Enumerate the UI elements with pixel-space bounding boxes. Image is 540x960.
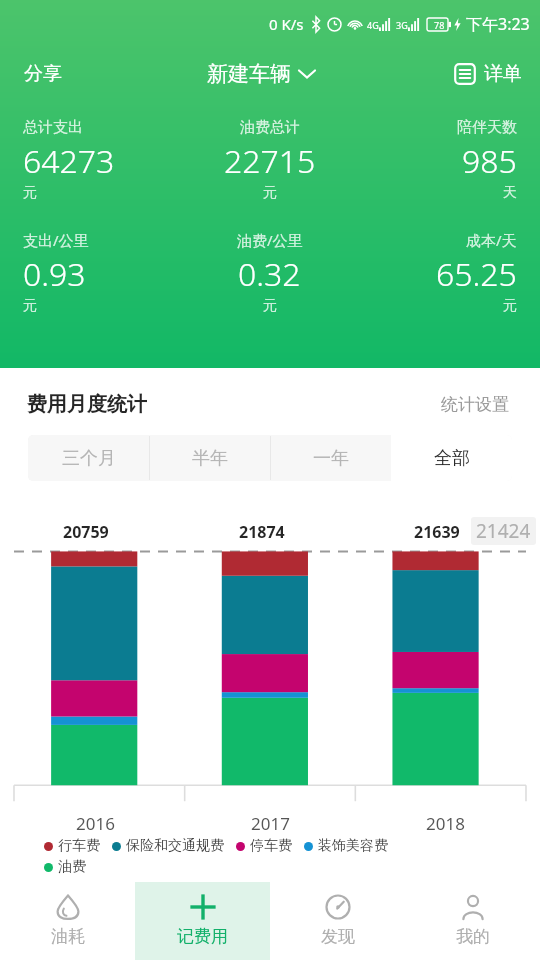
staticText: 保险和交通规费 <box>126 837 224 855</box>
staticText: 装饰美容费 <box>318 837 388 855</box>
staticText: 78 <box>434 19 445 31</box>
staticText: 全部 <box>434 447 470 470</box>
staticText: 3G <box>396 19 408 31</box>
staticText: 元 <box>263 184 277 202</box>
staticText: 2016 <box>76 812 115 835</box>
staticText: 4G <box>367 19 379 31</box>
staticText: 21639 <box>414 521 460 543</box>
button[interactable]: 新建车辆 <box>199 55 323 93</box>
staticText: 新建车辆 <box>207 61 291 87</box>
staticText: 油费总计 <box>240 118 300 137</box>
staticText: 油耗 <box>51 926 85 947</box>
staticText: 22715 <box>224 139 316 183</box>
staticText: 2018 <box>426 812 465 835</box>
button[interactable]: 全部 <box>391 435 512 481</box>
other: 记费用 <box>190 894 216 920</box>
button[interactable]: 油耗 <box>0 882 135 960</box>
staticText: 总计支出 <box>23 118 83 137</box>
staticText: 半年 <box>192 447 228 470</box>
staticText: 支出/公里 <box>23 230 89 250</box>
staticText: 详单 <box>484 62 522 86</box>
staticText: 三个月 <box>62 447 116 470</box>
staticText: 油费/公里 <box>237 230 303 250</box>
button[interactable]: 统计设置 <box>437 390 513 419</box>
staticText: 费用月度统计 <box>27 392 147 417</box>
staticText: 油费 <box>58 858 86 876</box>
button[interactable]: 半年 <box>149 435 270 481</box>
staticText: 分享 <box>24 62 62 86</box>
button[interactable]: 详单 <box>436 56 540 92</box>
staticText: 0.93 <box>23 252 86 296</box>
staticText: 我的 <box>456 926 490 947</box>
staticText: 0 K/s <box>269 14 304 34</box>
other: 油耗 <box>55 894 81 920</box>
other: 详单 <box>454 63 476 85</box>
button[interactable]: 记费用 <box>135 882 270 960</box>
staticText: 元 <box>23 297 37 315</box>
staticText: 985 <box>462 139 517 183</box>
staticText: 记费用 <box>177 926 228 947</box>
staticText: 64273 <box>23 139 115 183</box>
button[interactable]: 我的 <box>405 882 540 960</box>
staticText: 元 <box>23 184 37 202</box>
staticText: 下午3:23 <box>466 13 530 35</box>
staticText: 21424 <box>476 518 531 544</box>
staticText: 21874 <box>239 521 285 543</box>
staticText: 停车费 <box>250 837 292 855</box>
staticText: 统计设置 <box>441 394 509 415</box>
staticText: 天 <box>503 184 517 202</box>
button[interactable]: 分享 <box>0 54 86 94</box>
staticText: 2017 <box>251 812 290 835</box>
staticText: 成本/天 <box>466 230 517 250</box>
staticText: 0.32 <box>238 252 301 296</box>
staticText: 元 <box>263 297 277 315</box>
button[interactable]: 一年 <box>270 435 391 481</box>
staticText: 20759 <box>63 521 109 543</box>
other: 我的 <box>460 894 486 920</box>
staticText: 元 <box>503 297 517 315</box>
staticText: 发现 <box>321 926 355 947</box>
staticText: 65.25 <box>436 252 517 296</box>
other: 发现 <box>325 894 351 920</box>
button[interactable]: 三个月 <box>28 435 149 481</box>
staticText: 行车费 <box>58 837 100 855</box>
staticText: 一年 <box>313 447 349 470</box>
staticText: 陪伴天数 <box>457 118 517 137</box>
button[interactable]: 发现 <box>270 882 405 960</box>
